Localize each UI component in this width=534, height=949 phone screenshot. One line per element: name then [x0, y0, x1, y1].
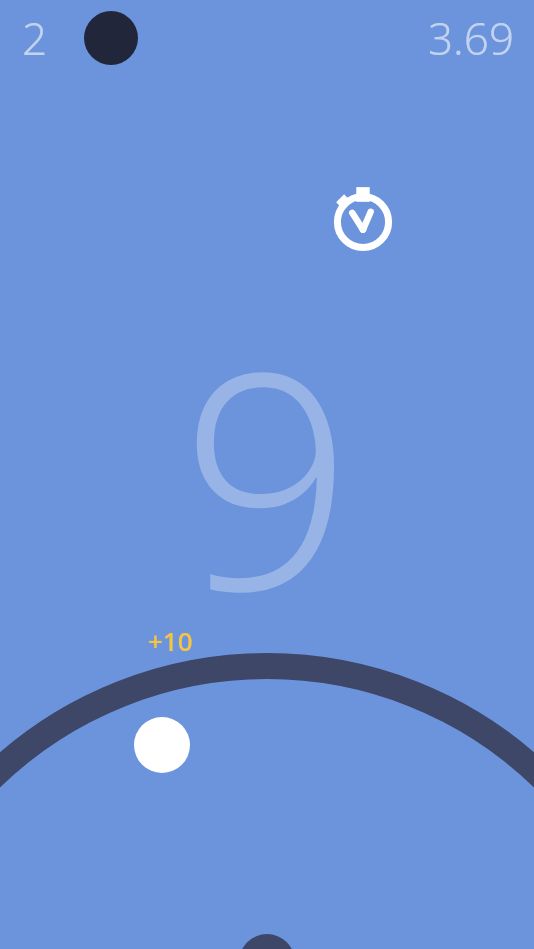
button[interactable]: Game area, tap to jump — [0, 0, 534, 949]
